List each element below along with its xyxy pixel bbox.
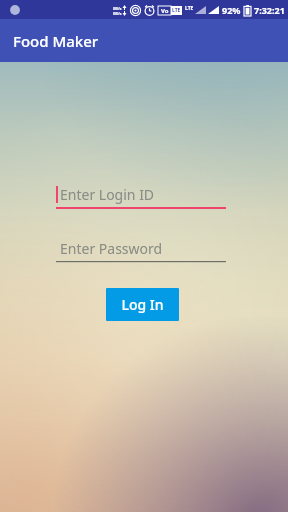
button[interactable]: Enter Login ID — [56, 181, 226, 207]
staticText: 0B/s — [113, 6, 122, 11]
staticText: LTE — [185, 5, 194, 12]
staticText: Vo — [161, 7, 169, 15]
staticText: Log In — [121, 295, 164, 314]
staticText: Food Maker — [13, 31, 99, 51]
staticText: LTE — [172, 7, 181, 14]
button[interactable]: Log In — [106, 288, 179, 321]
staticText: 0B/s — [113, 11, 122, 16]
staticText: 92% — [222, 4, 241, 16]
staticText: Enter Login ID — [60, 185, 155, 204]
button[interactable]: Enter Password — [56, 235, 226, 261]
staticText: Enter Password — [60, 239, 163, 258]
staticText: 7:32:21 — [254, 4, 285, 16]
